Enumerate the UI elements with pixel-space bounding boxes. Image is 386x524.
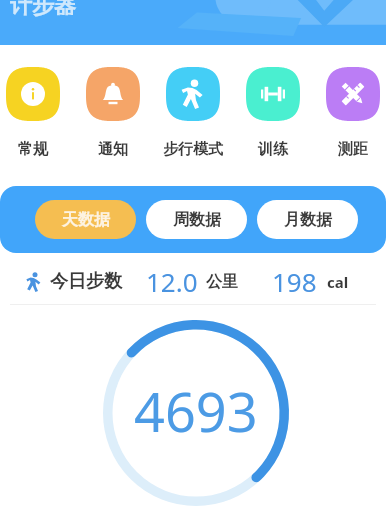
button[interactable]: 常规 <box>0 67 73 159</box>
other: 通知 <box>98 79 128 109</box>
other: 常规 <box>18 79 48 109</box>
staticText: 训练 <box>258 140 288 159</box>
other: 测距 <box>338 79 368 109</box>
staticText: 今日步数 <box>50 270 122 293</box>
staticText: 天数据 <box>62 210 110 230</box>
button[interactable]: 通知 <box>73 67 153 159</box>
staticText: 通知 <box>98 140 128 159</box>
staticText: 周数据 <box>173 210 221 230</box>
button[interactable]: 周数据 <box>146 200 247 239</box>
button[interactable]: 天数据 <box>35 200 136 239</box>
staticText: 计步器 <box>10 0 76 20</box>
staticText: 月数据 <box>284 210 332 230</box>
staticText: 常规 <box>18 140 48 159</box>
staticText: 测距 <box>338 140 368 159</box>
staticText: 4693 <box>134 374 258 448</box>
button[interactable]: 月数据 <box>257 200 358 239</box>
button[interactable]: 步行模式 <box>153 67 233 159</box>
staticText: cal <box>327 272 349 292</box>
staticText: 12.0 <box>146 264 198 299</box>
other: 训练 <box>258 79 288 109</box>
button[interactable]: 测距 <box>313 67 386 159</box>
staticText: 198 <box>272 264 317 299</box>
button[interactable]: 训练 <box>233 67 313 159</box>
other: 步行模式 <box>178 79 208 109</box>
staticText: 步行模式 <box>163 140 223 159</box>
staticText: 公里 <box>206 272 238 292</box>
